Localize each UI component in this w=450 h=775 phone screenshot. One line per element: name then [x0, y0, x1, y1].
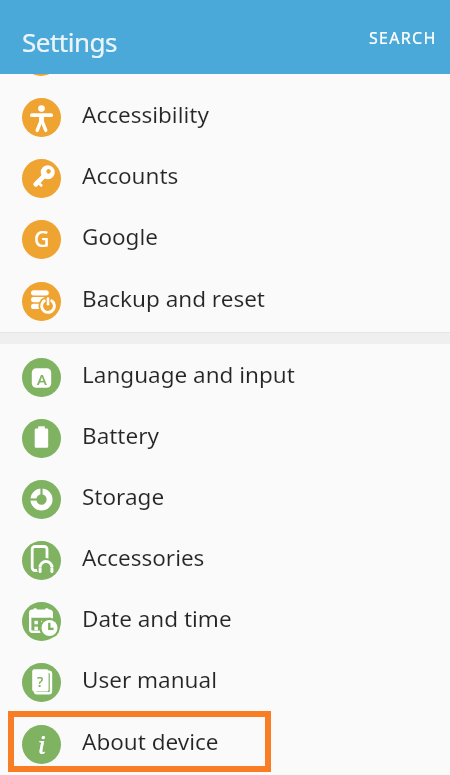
staticText: Battery: [82, 420, 159, 451]
staticText: Settings: [22, 24, 117, 59]
button[interactable]: Accessibility: [0, 87, 450, 148]
button[interactable]: SEARCH: [369, 27, 437, 49]
staticText: SEARCH: [369, 27, 437, 49]
staticText: A: [37, 369, 47, 389]
staticText: Google: [82, 221, 158, 252]
button[interactable]: ?: [0, 652, 450, 713]
button[interactable]: i: [0, 714, 450, 775]
staticText: About device: [82, 726, 219, 757]
staticText: User manual: [82, 664, 217, 695]
button[interactable]: G: [0, 209, 450, 270]
staticText: Accessories: [82, 542, 205, 573]
staticText: Accounts: [82, 160, 179, 191]
staticText: G: [34, 225, 50, 254]
button[interactable]: Date and time: [0, 591, 450, 652]
button[interactable]: A: [0, 347, 450, 408]
staticText: ?: [37, 672, 44, 691]
staticText: Language and input: [82, 359, 295, 390]
button[interactable]: Accounts: [0, 148, 450, 209]
button[interactable]: Battery: [0, 408, 450, 469]
staticText: i: [38, 729, 46, 760]
staticText: Storage: [82, 481, 165, 512]
staticText: Date and time: [82, 603, 232, 634]
staticText: Accessibility: [82, 99, 209, 130]
button[interactable]: Accessories: [0, 530, 450, 591]
button[interactable]: Backup and reset: [0, 271, 450, 332]
button[interactable]: Storage: [0, 469, 450, 530]
staticText: Backup and reset: [82, 283, 265, 314]
